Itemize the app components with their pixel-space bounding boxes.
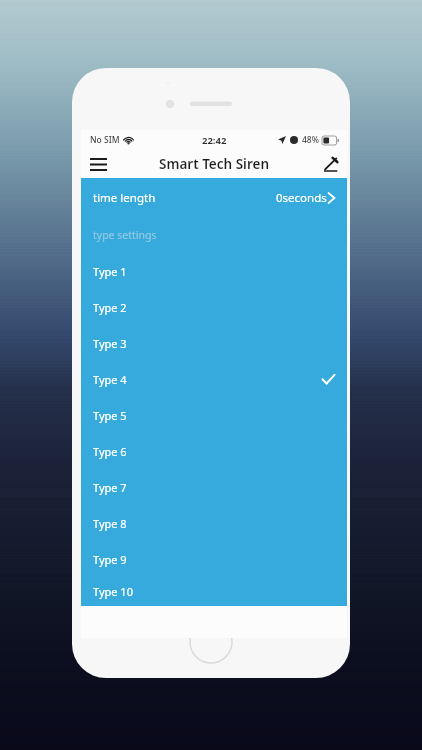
staticText: Type 2 xyxy=(93,300,127,315)
staticText: 0seconds xyxy=(276,190,327,206)
staticText: 48% xyxy=(302,134,319,146)
staticText: Type 9 xyxy=(93,552,127,567)
button[interactable]: Edit xyxy=(315,150,347,178)
button[interactable]: time length xyxy=(81,178,347,217)
staticText: type settings xyxy=(93,228,157,242)
button[interactable]: Type 6 xyxy=(81,433,347,469)
staticText: Smart Tech Siren xyxy=(159,155,270,173)
staticText: No SIM xyxy=(90,134,120,146)
staticText: Type 1 xyxy=(93,264,127,279)
staticText: Type 7 xyxy=(93,480,127,495)
button[interactable]: Type 10 xyxy=(81,577,347,606)
staticText: Type 8 xyxy=(93,516,127,531)
staticText: Type 4 xyxy=(93,372,127,387)
button[interactable]: Type 4 xyxy=(81,361,347,397)
button[interactable]: Type 9 xyxy=(81,541,347,577)
staticText: Type 6 xyxy=(93,444,127,459)
button[interactable]: Type 2 xyxy=(81,289,347,325)
button[interactable]: Menu xyxy=(81,150,115,178)
staticText: 22:42 xyxy=(202,134,227,147)
button[interactable]: Type 7 xyxy=(81,469,347,505)
button[interactable]: Type 1 xyxy=(81,253,347,289)
button[interactable]: Type 3 xyxy=(81,325,347,361)
staticText: Type 3 xyxy=(93,336,127,351)
button[interactable]: Type 5 xyxy=(81,397,347,433)
staticText: Type 10 xyxy=(93,584,133,599)
staticText: Type 5 xyxy=(93,408,127,423)
button[interactable]: Type 8 xyxy=(81,505,347,541)
staticText: time length xyxy=(93,190,156,206)
